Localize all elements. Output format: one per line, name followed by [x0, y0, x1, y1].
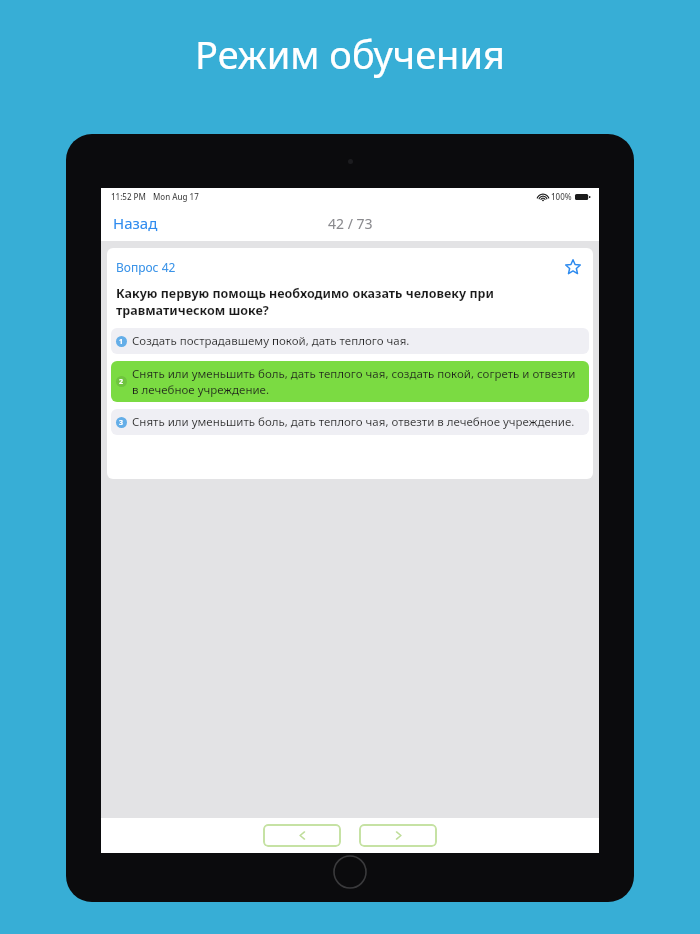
button[interactable]: Назад: [101, 207, 170, 239]
staticText: 11:52 PM: [111, 191, 146, 202]
button[interactable]: Предыдущий вопрос: [263, 824, 341, 847]
button[interactable]: 2: [111, 361, 589, 402]
button[interactable]: 1: [111, 328, 589, 354]
staticText: 100%: [551, 191, 572, 202]
button[interactable]: 3: [111, 409, 589, 435]
staticText: Создать пострадавшему покой, дать теплог…: [132, 333, 410, 349]
staticText: Снять или уменьшить боль, дать теплого ч…: [132, 366, 581, 397]
staticText: Снять или уменьшить боль, дать теплого ч…: [132, 414, 575, 430]
staticText: Какую первую помощь необходимо оказать ч…: [116, 285, 584, 318]
staticText: 2: [119, 377, 124, 387]
button[interactable]: Добавить в избранное: [562, 256, 584, 278]
staticText: Назад: [113, 213, 158, 233]
staticText: 1: [119, 337, 124, 347]
staticText: 42 / 73: [328, 214, 373, 233]
button[interactable]: Следующий вопрос: [359, 824, 437, 847]
staticText: Mon Aug 17: [153, 191, 199, 202]
staticText: 3: [119, 418, 124, 428]
staticText: Режим обучения: [195, 28, 505, 80]
staticText: Вопрос 42: [116, 259, 176, 275]
